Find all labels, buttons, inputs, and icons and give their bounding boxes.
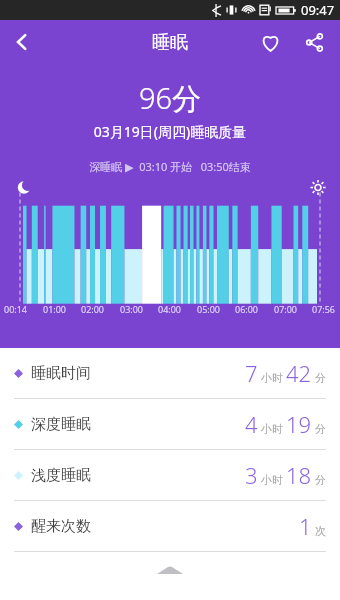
staticText: 分	[315, 422, 326, 436]
button[interactable]: 睡眠时间	[0, 348, 340, 398]
staticText: 次	[315, 524, 326, 538]
staticText: 03月19日(周四)睡眠质量	[0, 122, 340, 141]
button[interactable]: Share	[292, 20, 336, 64]
staticText: 1	[299, 511, 312, 541]
button[interactable]: 浅度睡眠	[0, 450, 340, 500]
staticText: 96分	[0, 78, 340, 118]
button[interactable]: 醒来次数	[0, 501, 340, 551]
staticText: 18	[286, 460, 312, 490]
staticText: 睡眠时间	[31, 364, 91, 383]
staticText: 00:14	[4, 303, 28, 315]
staticText: 07:56	[312, 303, 336, 315]
staticText: 09:47	[301, 1, 335, 19]
staticText: 分	[315, 371, 326, 385]
staticText: 04:00	[158, 303, 182, 315]
button[interactable]: Back	[0, 20, 44, 64]
button[interactable]: Expand	[0, 560, 340, 600]
staticText: 06:00	[235, 303, 259, 315]
staticText: 小时	[261, 422, 283, 436]
staticText: 小时	[261, 371, 283, 385]
staticText: 07:00	[274, 303, 298, 315]
staticText: 小时	[261, 473, 283, 487]
staticText: 4	[245, 409, 258, 439]
staticText: 01:00	[43, 303, 67, 315]
button[interactable]: 深度睡眠	[0, 399, 340, 449]
staticText: 深睡眠 ▶ 03:10 开始 03:50结束	[0, 159, 340, 174]
staticText: 02:00	[81, 303, 105, 315]
staticText: 睡眠	[152, 31, 188, 54]
staticText: 浅度睡眠	[31, 466, 91, 485]
staticText: 7	[245, 358, 258, 388]
staticText: 深度睡眠	[31, 415, 91, 434]
staticText: 03:00	[120, 303, 144, 315]
staticText: 醒来次数	[31, 517, 91, 536]
button[interactable]: Favorite	[248, 20, 292, 64]
staticText: 分	[315, 473, 326, 487]
staticText: 05:00	[197, 303, 221, 315]
staticText: 42	[286, 358, 312, 388]
staticText: 19	[286, 409, 312, 439]
staticText: 3	[245, 460, 258, 490]
